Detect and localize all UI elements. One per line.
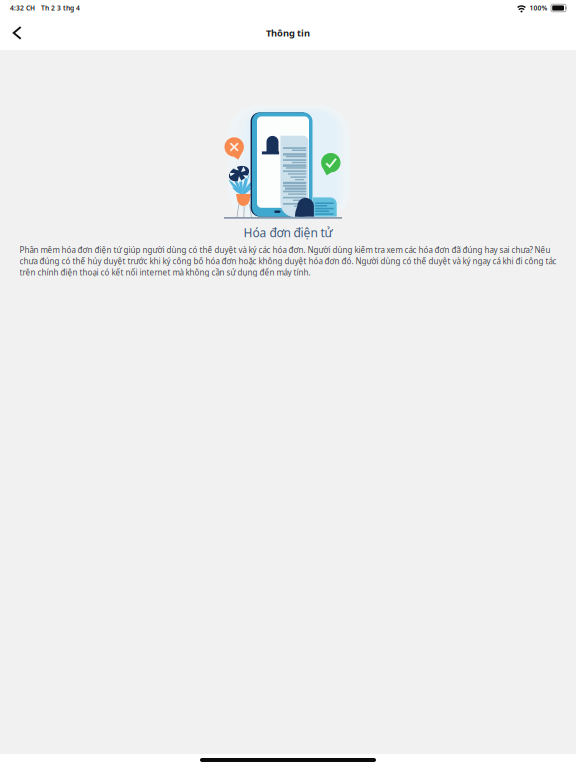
- staticText: Phần mềm hóa đơn điện tử giúp người dùng…: [19, 244, 556, 278]
- button[interactable]: Back: [0, 21, 33, 45]
- staticText: Hóa đơn điện tử: [243, 225, 332, 240]
- staticText: 100%: [529, 4, 547, 12]
- staticText: 4:32 CH Th 2 3 thg 4: [10, 4, 80, 12]
- staticText: Thông tin: [266, 27, 310, 39]
